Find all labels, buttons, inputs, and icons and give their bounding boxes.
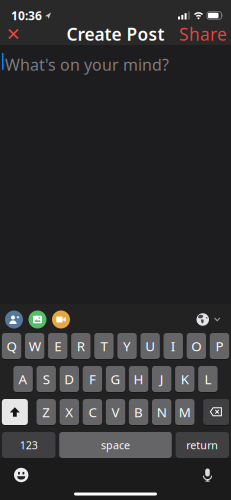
- staticText: D: [64, 370, 74, 388]
- staticText: Q: [6, 337, 16, 355]
- button[interactable]: return: [175, 432, 229, 458]
- staticText: A: [19, 370, 28, 388]
- staticText: J: [160, 370, 164, 388]
- staticText: L: [204, 370, 211, 388]
- button[interactable]: P: [210, 333, 229, 359]
- button[interactable]: Y: [117, 333, 137, 359]
- staticText: space: [101, 438, 130, 452]
- staticText: Y: [123, 337, 131, 355]
- staticText: What's on your mind?: [5, 54, 169, 75]
- button[interactable]: Z: [36, 399, 56, 425]
- button[interactable]: K: [175, 366, 194, 392]
- staticText: H: [134, 370, 144, 388]
- staticText: K: [181, 370, 189, 388]
- button[interactable]: A: [13, 366, 33, 392]
- button[interactable]: F: [83, 366, 102, 392]
- staticText: V: [111, 403, 119, 421]
- button[interactable]: S: [36, 366, 56, 392]
- staticText: I: [171, 337, 176, 355]
- staticText: N: [157, 403, 167, 421]
- staticText: B: [134, 403, 143, 421]
- button[interactable]: Shift: [2, 399, 28, 425]
- staticText: W: [29, 337, 41, 355]
- button[interactable]: Photo: [28, 310, 46, 328]
- button[interactable]: 123: [2, 432, 55, 458]
- button[interactable]: Q: [2, 333, 21, 359]
- staticText: O: [191, 337, 201, 355]
- staticText: S: [43, 370, 50, 388]
- staticText: Share: [179, 22, 227, 45]
- button[interactable]: Tag People: [5, 310, 23, 328]
- button[interactable]: I: [163, 333, 183, 359]
- staticText: 10:36: [11, 7, 42, 23]
- staticText: Create Post: [66, 22, 164, 45]
- button[interactable]: V: [106, 399, 125, 425]
- button[interactable]: B: [129, 399, 148, 425]
- button[interactable]: N: [152, 399, 171, 425]
- button[interactable]: U: [140, 333, 160, 359]
- staticText: G: [110, 370, 120, 388]
- button[interactable]: R: [71, 333, 90, 359]
- button[interactable]: Share: [179, 22, 231, 45]
- staticText: F: [89, 370, 96, 388]
- button[interactable]: G: [106, 366, 125, 392]
- button[interactable]: J: [152, 366, 171, 392]
- button[interactable]: X: [60, 399, 79, 425]
- button[interactable]: H: [129, 366, 148, 392]
- button[interactable]: Dictation: [203, 468, 231, 481]
- staticText: T: [100, 337, 107, 355]
- staticText: C: [88, 403, 96, 421]
- staticText: P: [215, 337, 223, 355]
- button[interactable]: L: [198, 366, 218, 392]
- staticText: M: [179, 403, 191, 421]
- staticText: 123: [20, 438, 38, 452]
- button[interactable]: T: [94, 333, 114, 359]
- button[interactable]: Close: [0, 29, 26, 39]
- staticText: X: [65, 403, 73, 421]
- staticText: R: [77, 337, 85, 355]
- button[interactable]: W: [25, 333, 44, 359]
- button[interactable]: Emoji: [0, 468, 28, 482]
- button[interactable]: O: [187, 333, 206, 359]
- button[interactable]: Choose Keyboard: [196, 313, 231, 326]
- staticText: E: [54, 337, 61, 355]
- staticText: return: [186, 438, 218, 452]
- button[interactable]: space: [59, 432, 172, 458]
- button[interactable]: Live Video: [52, 310, 70, 328]
- button[interactable]: Delete: [203, 399, 229, 425]
- button[interactable]: M: [175, 399, 194, 425]
- button[interactable]: E: [48, 333, 67, 359]
- button[interactable]: D: [60, 366, 79, 392]
- button[interactable]: C: [83, 399, 102, 425]
- staticText: Z: [42, 403, 50, 421]
- staticText: U: [145, 337, 155, 355]
